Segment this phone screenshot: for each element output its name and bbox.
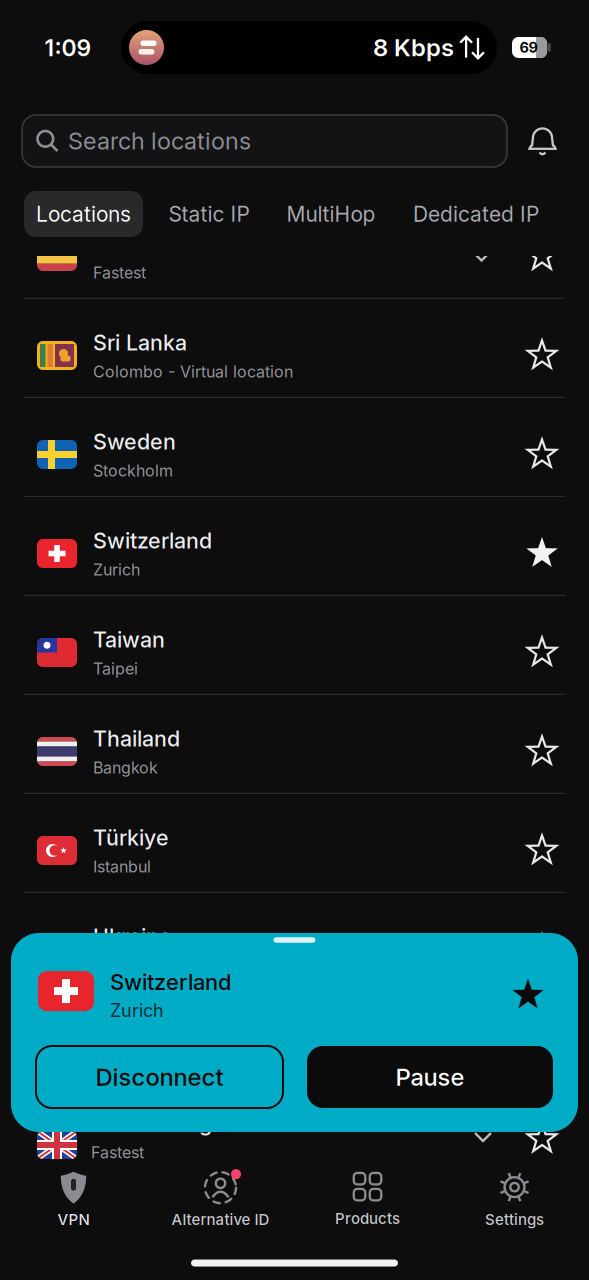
staticText: Zurich (110, 1000, 164, 1021)
staticText: Colombo - Virtual location (93, 362, 293, 381)
staticText: Taiwan (93, 627, 165, 652)
staticText: Search locations (68, 127, 251, 155)
button[interactable]: VPN (0, 1167, 147, 1233)
staticText: United Kingdom (93, 1111, 257, 1136)
button[interactable]: Static IP (0, 0, 589, 1280)
button[interactable]: Switzerland (0, 497, 589, 596)
staticText: Switzerland (93, 528, 212, 553)
staticText: Locations (36, 202, 131, 226)
staticText: Thailand (93, 726, 180, 751)
staticText: 69 (519, 39, 537, 56)
staticText: Pause (395, 1063, 464, 1091)
staticText: Ukraine (93, 924, 172, 949)
staticText: Disconnect (95, 1063, 223, 1091)
button[interactable]: Ukraine (0, 893, 589, 992)
staticText: Taipei (93, 659, 138, 678)
staticText: Products (335, 1210, 400, 1227)
button[interactable]: Notifications (528, 126, 557, 156)
button[interactable]: Thailand (0, 695, 589, 794)
button[interactable]: Settings (441, 1167, 588, 1233)
button[interactable]: Pause (307, 1046, 553, 1108)
staticText: Türkiye (93, 825, 169, 850)
button[interactable]: Products (294, 1167, 441, 1233)
staticText: Fastest (91, 1143, 144, 1162)
staticText: Fastest (93, 263, 146, 282)
button[interactable]: Sweden (0, 398, 589, 497)
staticText: Sweden (93, 429, 176, 454)
staticText: Dedicated IP (413, 202, 539, 226)
staticText: VPN (57, 1211, 89, 1228)
button[interactable]: Disconnect (36, 1046, 283, 1108)
staticText: Kyiv (93, 956, 125, 975)
staticText: Spain (93, 231, 150, 256)
staticText: 8 Kbps (373, 33, 454, 62)
staticText: Alternative ID (171, 1211, 269, 1228)
button[interactable]: Dedicated IP (0, 0, 589, 1280)
button[interactable]: Search locations (22, 115, 507, 167)
staticText: MultiHop (286, 202, 375, 226)
staticText: Stockholm (93, 461, 173, 480)
button[interactable]: Sri Lanka (0, 299, 589, 398)
button[interactable]: Türkiye (0, 794, 589, 893)
button[interactable]: Taiwan (0, 596, 589, 695)
button[interactable]: Spain (0, 200, 589, 299)
staticText: Switzerland (110, 969, 231, 995)
staticText: Istanbul (93, 857, 151, 876)
button[interactable]: Locations (24, 191, 143, 237)
staticText: Static IP (168, 202, 249, 226)
staticText: Zurich (93, 560, 140, 579)
button[interactable]: MultiHop (0, 0, 589, 1280)
staticText: 1:09 (44, 34, 91, 61)
staticText: Settings (485, 1211, 544, 1228)
staticText: Sri Lanka (93, 330, 187, 355)
staticText: Bangkok (93, 758, 158, 777)
button[interactable]: Alternative ID (147, 1167, 294, 1233)
